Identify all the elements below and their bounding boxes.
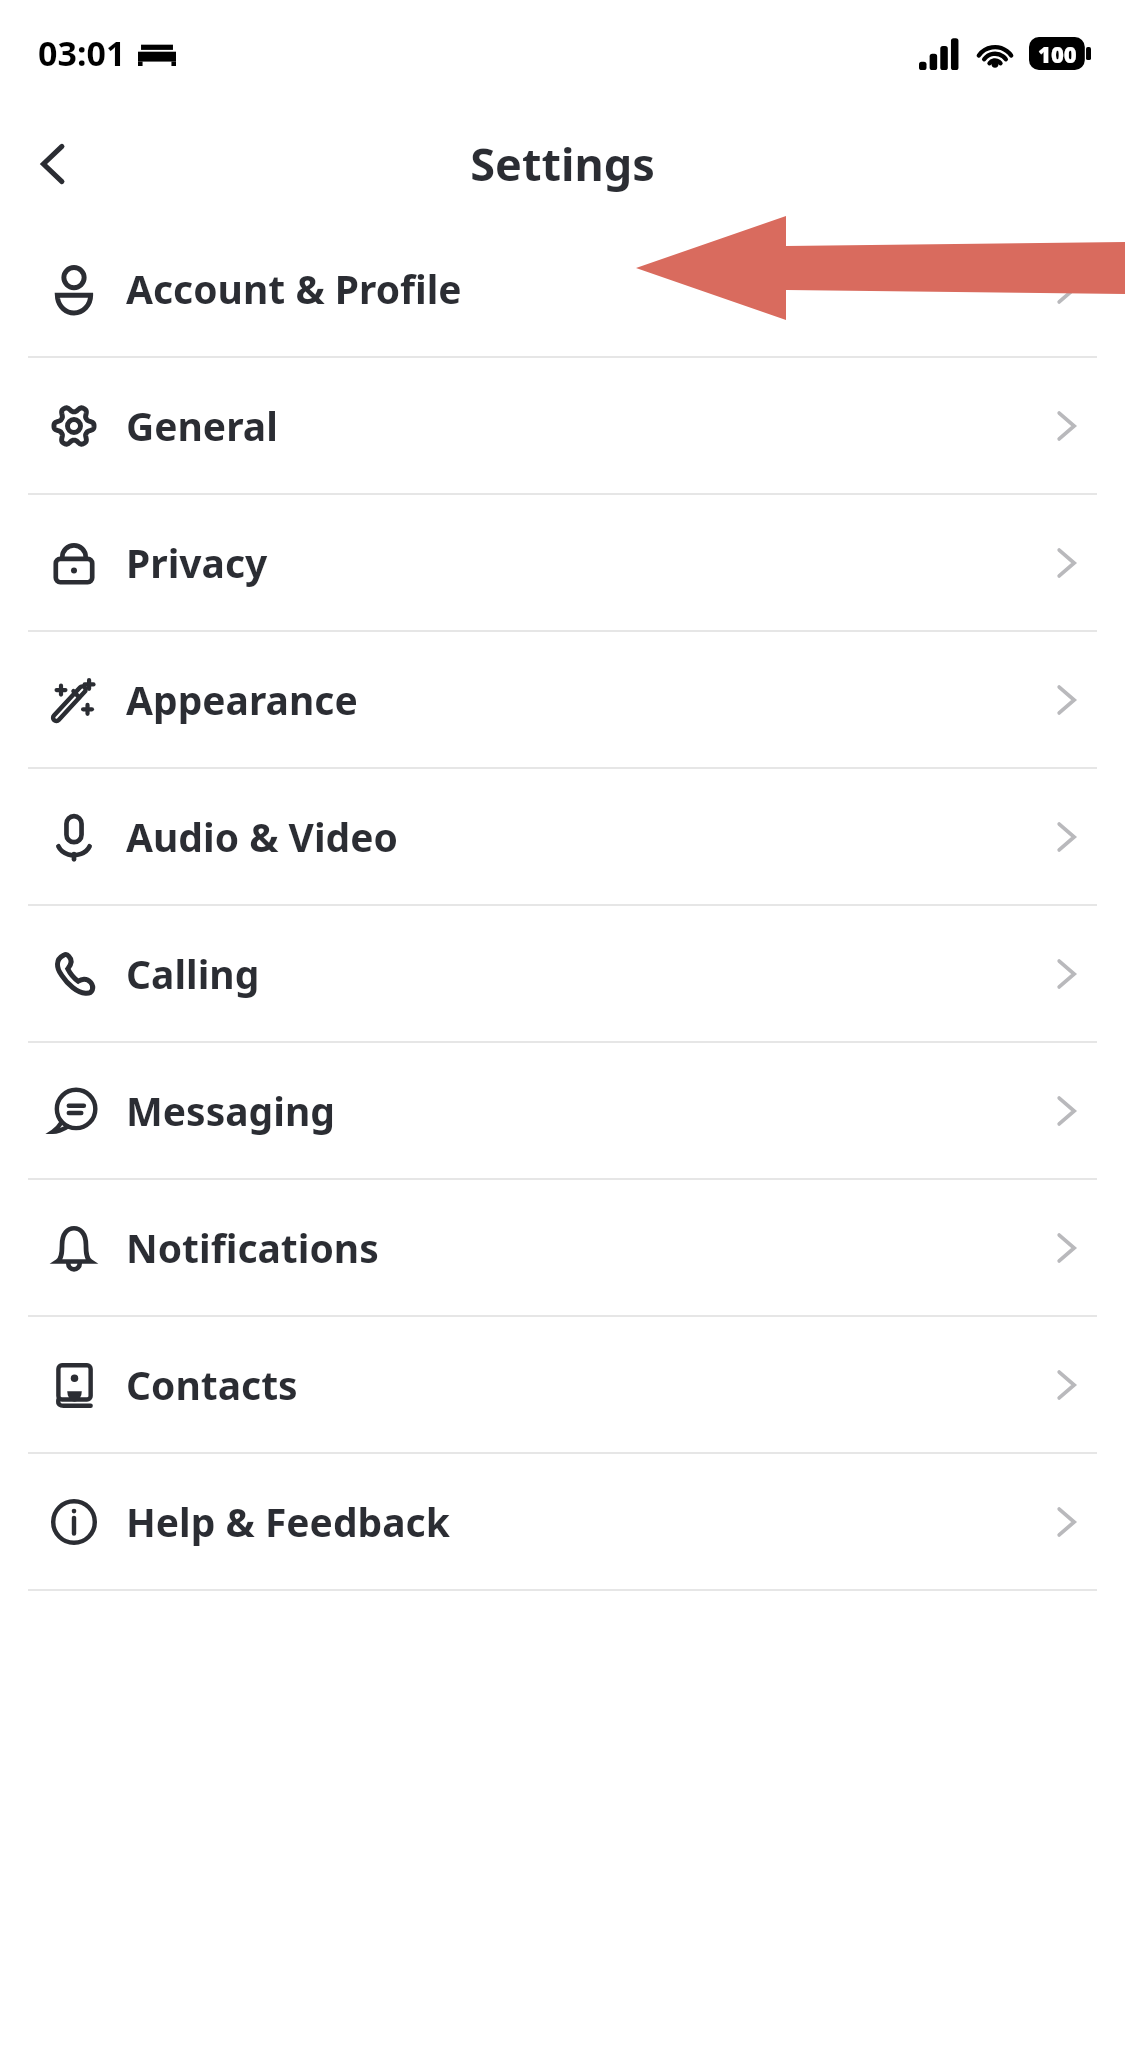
button[interactable]: Notifications xyxy=(0,1180,1125,1315)
button[interactable]: Audio & Video xyxy=(0,769,1125,904)
button[interactable]: General xyxy=(0,358,1125,493)
staticText: Notifications xyxy=(126,1221,379,1274)
staticText: Messaging xyxy=(126,1084,335,1137)
staticText: Settings xyxy=(470,133,655,194)
staticText: Audio & Video xyxy=(126,810,398,863)
staticText: 100 xyxy=(1038,39,1077,69)
staticText: Contacts xyxy=(126,1358,298,1411)
staticText: Calling xyxy=(126,947,260,1000)
staticText: Privacy xyxy=(126,536,268,589)
button[interactable]: Appearance xyxy=(0,632,1125,767)
staticText: 03:01 xyxy=(38,30,126,76)
button[interactable]: Account & Profile xyxy=(0,221,1125,356)
staticText: Account & Profile xyxy=(126,262,462,315)
button[interactable]: Calling xyxy=(0,906,1125,1041)
button[interactable]: Messaging xyxy=(0,1043,1125,1178)
button[interactable]: Back xyxy=(16,126,92,202)
button[interactable]: Privacy xyxy=(0,495,1125,630)
button[interactable]: Contacts xyxy=(0,1317,1125,1452)
staticText: General xyxy=(126,399,278,452)
staticText: Help & Feedback xyxy=(126,1495,450,1548)
button[interactable]: Help & Feedback xyxy=(0,1454,1125,1589)
staticText: Appearance xyxy=(126,673,358,726)
